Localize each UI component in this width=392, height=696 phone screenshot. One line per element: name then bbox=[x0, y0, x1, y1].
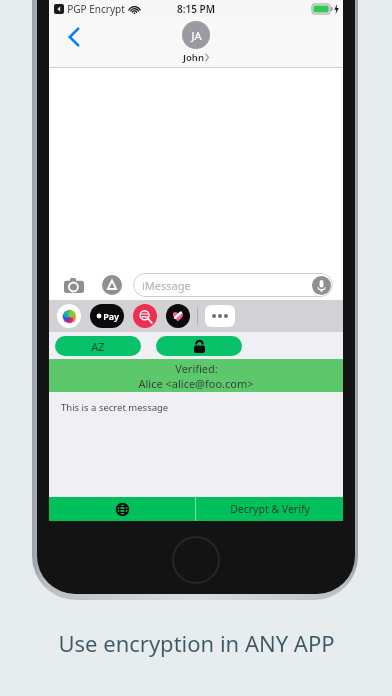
staticText: Verified: bbox=[175, 361, 218, 376]
button[interactable]: Decrypt & Verify bbox=[196, 497, 343, 521]
button[interactable]: JA bbox=[182, 21, 210, 64]
button[interactable]: Stickers bbox=[166, 304, 190, 328]
button[interactable]: More apps bbox=[205, 305, 235, 327]
staticText: John bbox=[183, 51, 204, 64]
button[interactable]: Images bbox=[133, 304, 157, 328]
button[interactable]: Camera bbox=[63, 274, 85, 296]
other: Home bbox=[172, 536, 220, 584]
button[interactable]: Language bbox=[49, 497, 195, 521]
staticText: AZ bbox=[91, 339, 105, 354]
other: Dictate bbox=[312, 276, 331, 295]
button[interactable]: Photos bbox=[57, 304, 81, 328]
staticText: This is a secret message bbox=[61, 401, 169, 414]
staticText: iMessage bbox=[142, 278, 191, 293]
button[interactable]: Apple Pay bbox=[90, 304, 124, 328]
staticText: JA bbox=[191, 28, 202, 43]
button[interactable]: App Store bbox=[101, 274, 123, 296]
staticText: Pay bbox=[103, 310, 119, 322]
staticText: PGP Encrypt bbox=[67, 2, 125, 16]
button[interactable]: AZ bbox=[55, 336, 141, 356]
button[interactable]: iMessage bbox=[133, 273, 333, 297]
button[interactable]: Back bbox=[57, 20, 91, 54]
staticText: Alice <alice@foo.com> bbox=[138, 376, 254, 391]
staticText: Decrypt & Verify bbox=[230, 502, 310, 516]
button[interactable]: Encrypt bbox=[156, 336, 242, 356]
staticText: Use encryption in ANY APP bbox=[58, 628, 335, 658]
staticText: 8:15 PM bbox=[177, 2, 215, 16]
